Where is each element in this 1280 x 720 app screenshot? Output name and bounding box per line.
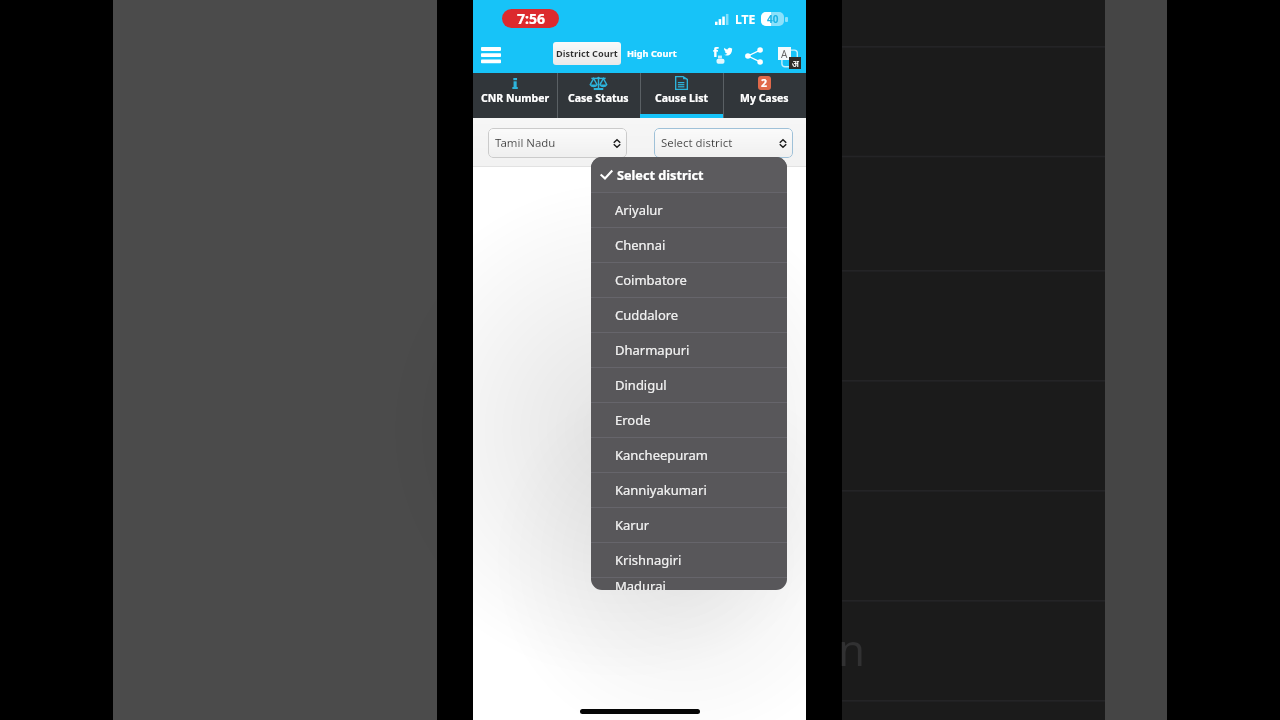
- button[interactable]: Ariyalur: [591, 192, 787, 227]
- button[interactable]: Tamil Nadu: [488, 128, 627, 158]
- button[interactable]: Kancheepuram: [591, 437, 787, 472]
- staticText: High Court: [627, 47, 677, 60]
- button[interactable]: District Court: [553, 42, 621, 65]
- staticText: Coimbatore: [615, 271, 687, 289]
- button[interactable]: Chennai: [591, 227, 787, 262]
- staticText: 7:56: [517, 9, 545, 28]
- staticText: A: [781, 47, 788, 60]
- staticText: Select district: [661, 135, 733, 151]
- staticText: Kancheepuram: [615, 446, 708, 464]
- staticText: Cuddalore: [615, 306, 679, 324]
- staticText: My Cases: [740, 91, 789, 105]
- button[interactable]: Dharmapuri: [591, 332, 787, 367]
- button[interactable]: High Court: [626, 47, 678, 60]
- staticText: Case Status: [568, 91, 629, 105]
- button[interactable]: Case Status: [557, 73, 640, 118]
- staticText: 40: [767, 12, 779, 26]
- button[interactable]: Krishnagiri: [591, 542, 787, 577]
- button[interactable]: Select district: [654, 128, 793, 158]
- staticText: Chennai: [615, 236, 666, 254]
- staticText: Dharmapuri: [615, 341, 690, 359]
- button[interactable]: Coimbatore: [591, 262, 787, 297]
- staticText: Cause List: [655, 91, 708, 105]
- button[interactable]: Menu: [481, 47, 501, 63]
- button[interactable]: CNR Number: [473, 73, 557, 118]
- staticText: अ: [792, 57, 799, 69]
- staticText: f: [713, 43, 719, 61]
- staticText: Kanniyakumari: [615, 481, 707, 499]
- staticText: Tamil Nadu: [495, 135, 556, 151]
- staticText: Erode: [615, 411, 651, 429]
- button[interactable]: Select district: [591, 157, 787, 192]
- button[interactable]: Social media: [712, 45, 733, 67]
- staticText: Krishnagiri: [615, 551, 682, 569]
- staticText: Ariyalur: [615, 201, 663, 219]
- button[interactable]: Karur: [591, 507, 787, 542]
- staticText: Select district: [617, 166, 704, 183]
- staticText: 2: [761, 76, 768, 90]
- staticText: Karur: [615, 516, 650, 534]
- staticText: District Court: [556, 47, 618, 60]
- button[interactable]: Kanniyakumari: [591, 472, 787, 507]
- button[interactable]: Madurai: [591, 577, 787, 590]
- button[interactable]: 2: [723, 73, 806, 118]
- button[interactable]: Dindigul: [591, 367, 787, 402]
- button[interactable]: Cuddalore: [591, 297, 787, 332]
- staticText: CNR Number: [481, 91, 550, 105]
- staticText: Madurai: [615, 577, 666, 590]
- staticText: n: [838, 619, 866, 679]
- button[interactable]: Share: [745, 47, 763, 65]
- staticText: LTE: [735, 11, 756, 27]
- button[interactable]: Cause List: [640, 73, 723, 118]
- button[interactable]: Change language: [778, 47, 801, 69]
- button[interactable]: Erode: [591, 402, 787, 437]
- staticText: Dindigul: [615, 376, 667, 394]
